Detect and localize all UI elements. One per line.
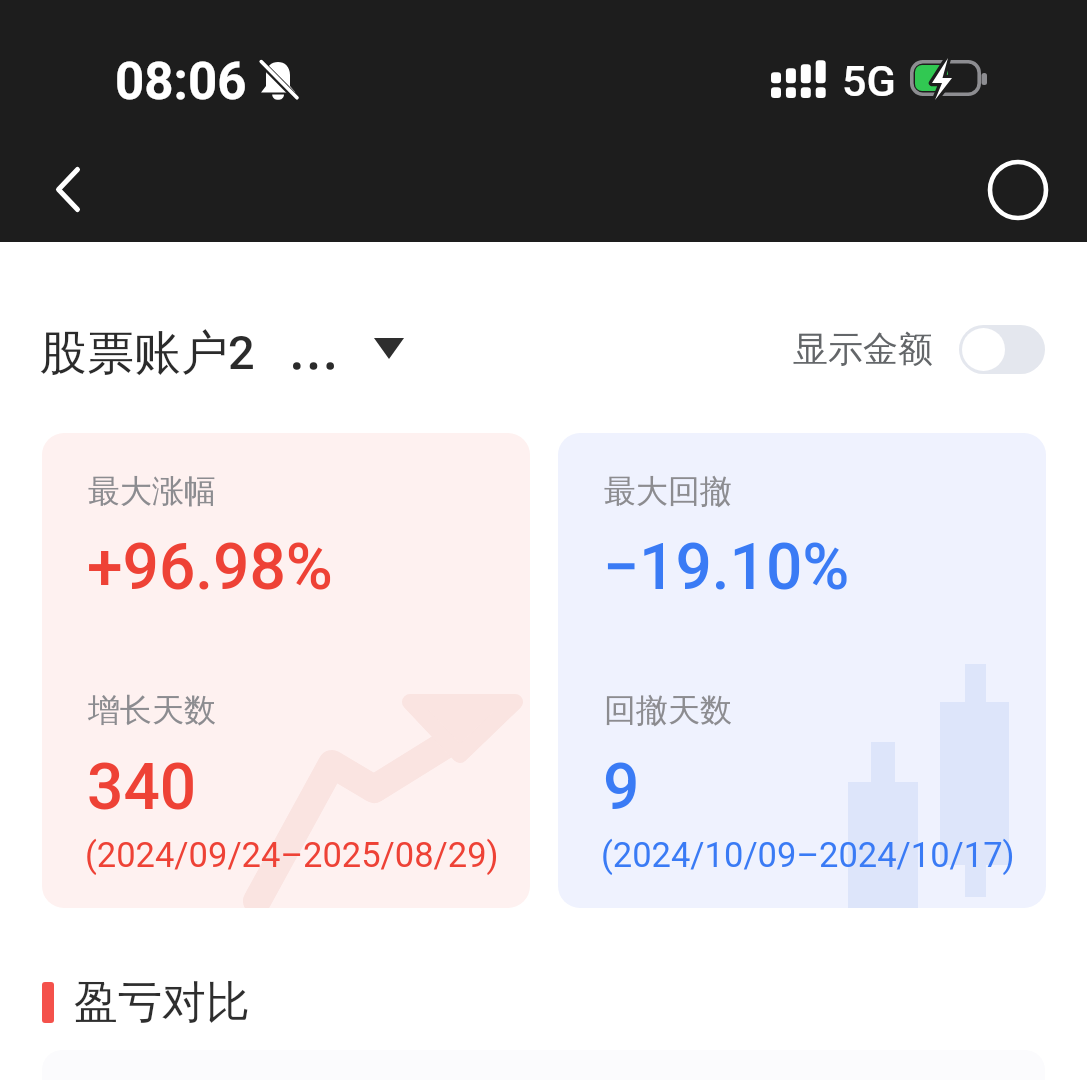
staticText: +96.98% <box>87 530 333 605</box>
button[interactable]: Profile <box>976 148 1060 232</box>
button[interactable]: 股票账户2 <box>40 318 406 388</box>
staticText: (2024/10/09–2024/10/17) <box>601 835 1015 875</box>
staticText: 340 <box>87 750 197 825</box>
staticText: 股票账户2 <box>40 324 255 383</box>
other: Notifications silenced <box>258 58 302 102</box>
staticText: −19.10% <box>603 530 850 605</box>
staticText: 9 <box>603 750 640 825</box>
staticText: 最大涨幅 <box>88 471 216 511</box>
staticText: 最大回撤 <box>604 471 732 511</box>
staticText: 5G <box>842 56 896 106</box>
staticText: 回撤天数 <box>604 690 732 730</box>
button[interactable]: 显示金额 <box>793 327 933 371</box>
button[interactable]: Show amount, off <box>959 325 1045 374</box>
staticText: 08:06 <box>115 52 247 112</box>
button[interactable]: 盈亏对比 <box>42 975 250 1030</box>
staticText: 增长天数 <box>88 690 216 730</box>
other: Signal strength <box>771 60 826 98</box>
other: Battery charging <box>910 60 988 98</box>
button[interactable]: 最大回撤 <box>558 433 1046 908</box>
staticText: 盈亏对比 <box>74 975 250 1030</box>
button[interactable]: Back <box>26 147 110 231</box>
staticText: (2024/09/24–2025/08/29) <box>85 835 499 875</box>
button[interactable]: 最大涨幅 <box>42 433 530 908</box>
